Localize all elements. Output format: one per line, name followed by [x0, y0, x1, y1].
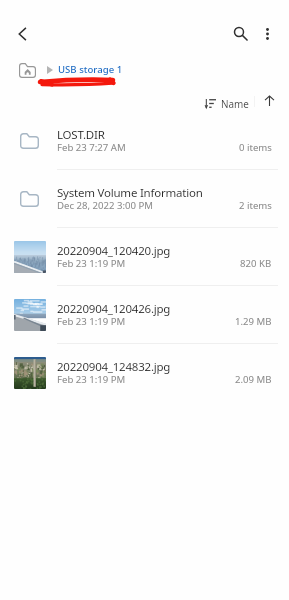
staticText: 820 KB [240, 257, 272, 270]
button[interactable]: 20220904_120426.jpg [0, 286, 289, 343]
button[interactable]: 20220904_120420.jpg [0, 228, 289, 285]
staticText: Feb 23 1:19 PM [57, 373, 126, 386]
staticText: Feb 23 1:19 PM [57, 257, 126, 270]
button[interactable]: 20220904_124832.jpg [0, 344, 289, 401]
staticText: 2 items [239, 199, 272, 212]
staticText: 2.09 MB [235, 373, 272, 386]
button[interactable]: LOST.DIR [0, 112, 289, 169]
button[interactable]: USB storage 1 [58, 63, 123, 76]
staticText: System Volume Information [57, 185, 203, 201]
button[interactable]: Name [203, 95, 251, 112]
staticText: LOST.DIR [57, 127, 105, 143]
staticText: 20220904_120420.jpg [57, 243, 171, 259]
staticText: Dec 28, 2022 3:00 PM [57, 199, 154, 212]
button[interactable]: Navigate up [9, 20, 36, 47]
button[interactable]: More options [253, 20, 281, 48]
staticText: 20220904_120426.jpg [57, 301, 171, 317]
staticText: USB storage 1 [58, 63, 123, 76]
staticText: 0 items [239, 141, 272, 154]
button[interactable]: System Volume Information [0, 170, 289, 227]
button[interactable]: Home [17, 61, 38, 79]
staticText: Feb 23 1:19 PM [57, 315, 126, 328]
staticText: Feb 23 7:27 AM [57, 141, 126, 154]
button[interactable]: Search [226, 19, 254, 47]
staticText: Name [221, 97, 249, 110]
button[interactable]: Sort ascending [258, 90, 280, 112]
staticText: 1.29 MB [235, 315, 272, 328]
staticText: 20220904_124832.jpg [57, 359, 171, 375]
